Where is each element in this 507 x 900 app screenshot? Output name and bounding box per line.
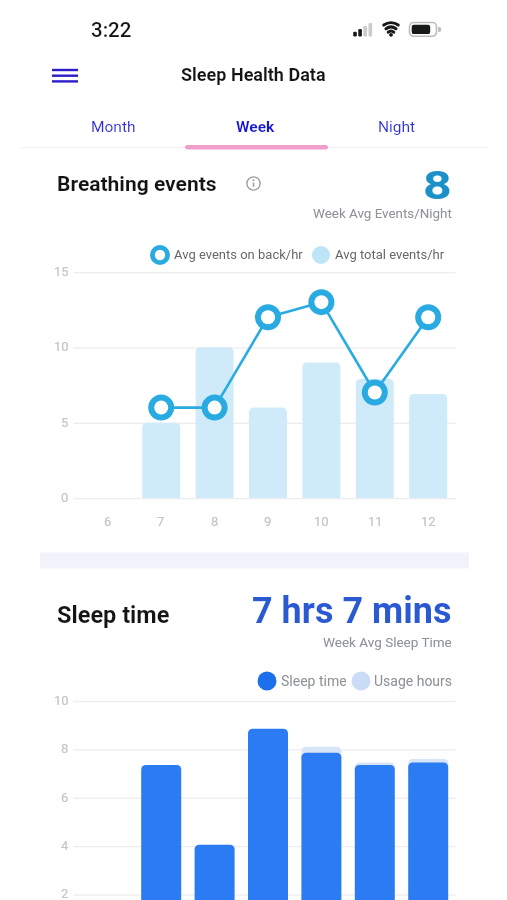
staticText: 10	[314, 514, 329, 529]
staticText: 8	[61, 741, 69, 756]
staticText: 9	[264, 514, 272, 529]
staticText: 11	[368, 514, 383, 529]
staticText: Week Avg Sleep Time	[323, 634, 452, 650]
staticText: Breathing events	[57, 172, 217, 197]
button[interactable]	[44, 58, 86, 92]
staticText: 8	[211, 514, 219, 529]
staticText: 0	[61, 490, 69, 505]
staticText: 4	[61, 838, 69, 853]
button[interactable]: Night	[326, 106, 468, 148]
staticText: 7 hrs 7 mins	[252, 590, 452, 632]
staticText: 7	[157, 514, 165, 529]
staticText: 10	[54, 693, 69, 708]
staticText: Avg total events/hr	[335, 247, 445, 262]
staticText: Week	[236, 118, 275, 136]
button[interactable]: Week	[184, 106, 326, 148]
staticText: Sleep Health Data	[181, 64, 326, 85]
staticText: Night	[378, 118, 416, 136]
staticText: Sleep time	[57, 601, 170, 629]
button[interactable]: Month	[42, 106, 184, 148]
staticText: Avg events on back/hr	[174, 247, 303, 262]
staticText: 15	[54, 264, 69, 279]
staticText: 12	[421, 514, 436, 529]
staticText: 2	[61, 886, 69, 900]
staticText: 10	[54, 339, 69, 354]
staticText: Week Avg Events/Night	[313, 206, 452, 222]
staticText: Month	[91, 118, 136, 136]
staticText: 6	[61, 790, 69, 805]
staticText: 3:22	[91, 18, 132, 42]
staticText: 5	[61, 415, 69, 430]
staticText: Usage hours	[374, 673, 453, 689]
staticText: Sleep time	[281, 673, 347, 689]
staticText: 8	[423, 164, 452, 209]
staticText: 6	[104, 514, 112, 529]
button[interactable]	[243, 173, 264, 194]
